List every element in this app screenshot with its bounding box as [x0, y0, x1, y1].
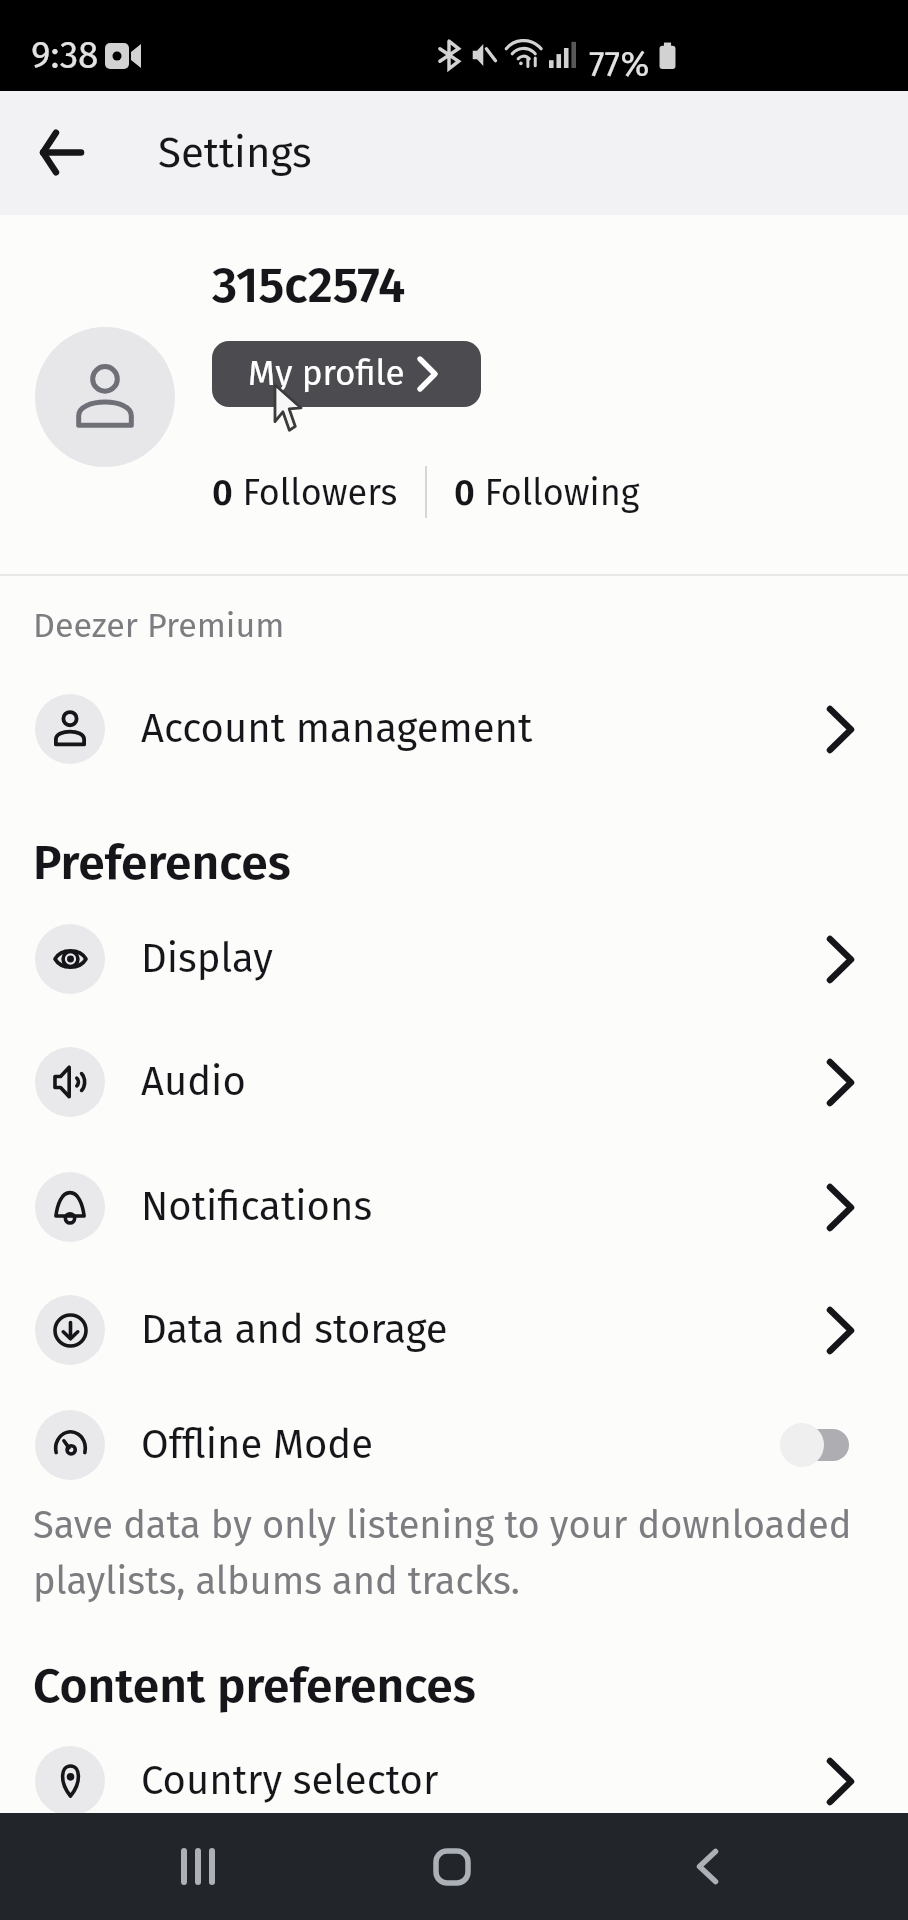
staticText: 0 Following [454, 471, 640, 514]
staticText: Content preferences [33, 1657, 476, 1715]
button[interactable]: Data and storage [0, 1268, 908, 1392]
button[interactable]: My profile [212, 341, 481, 407]
button[interactable]: Notifications [0, 1145, 908, 1269]
staticText: Display [141, 935, 827, 983]
staticText: 315c2574 [212, 256, 406, 315]
staticText: Country selector [141, 1757, 827, 1805]
staticText: Data and storage [141, 1306, 827, 1354]
staticText: Audio [141, 1058, 827, 1106]
button[interactable]: Home [392, 1813, 512, 1920]
button[interactable]: Offline Mode [0, 1383, 908, 1507]
staticText: Deezer Premium [33, 605, 285, 646]
staticText: My profile [248, 352, 405, 394]
staticText: 9:38 [31, 33, 99, 77]
staticText: 0 Followers [212, 471, 398, 514]
button[interactable]: Back [25, 116, 97, 188]
staticText: Save data by only listening to your down… [33, 1502, 852, 1604]
button[interactable]: Country selector [0, 1719, 908, 1843]
staticText: Notifications [141, 1183, 827, 1231]
button[interactable]: Recent apps [138, 1813, 258, 1920]
staticText: Offline Mode [141, 1421, 785, 1469]
button[interactable]: Display [0, 897, 908, 1021]
staticText: Preferences [33, 834, 291, 892]
button[interactable]: Back [647, 1813, 767, 1920]
staticText: 77% [589, 43, 650, 85]
button[interactable]: Account management [0, 667, 908, 791]
staticText: Account management [141, 705, 827, 753]
staticText: Settings [158, 128, 312, 178]
button[interactable]: Audio [0, 1020, 908, 1144]
